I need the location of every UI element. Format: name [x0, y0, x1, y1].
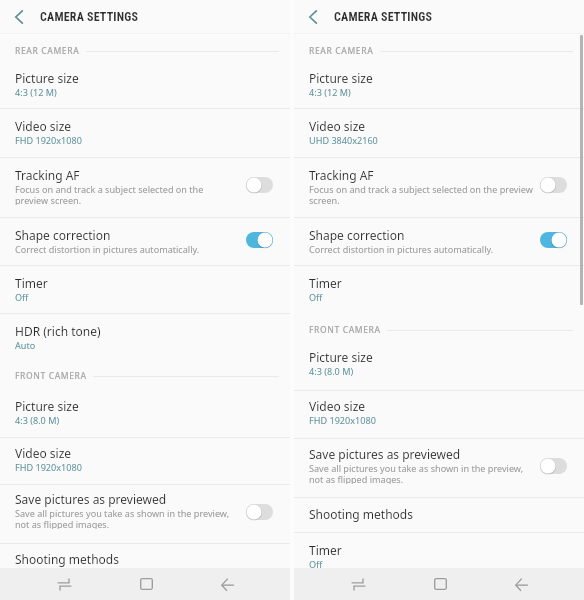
button[interactable]: Tracking AF: [294, 158, 584, 217]
button[interactable]: Picture size: [0, 391, 290, 437]
staticText: CAMERA SETTINGS: [334, 10, 433, 24]
staticText: Picture size: [15, 70, 79, 86]
staticText: CAMERA SETTINGS: [40, 10, 139, 24]
button[interactable]: Back: [459, 568, 584, 600]
button[interactable]: Tracking AF: [0, 158, 290, 217]
staticText: Auto: [15, 339, 36, 351]
staticText: 4:3 (8.0 M): [15, 414, 60, 426]
staticText: Timer: [309, 275, 342, 291]
button[interactable]: Save pictures as previewed: [294, 439, 584, 497]
staticText: Correct distortion in pictures automatic…: [309, 243, 494, 255]
staticText: Shape correction: [309, 227, 405, 243]
staticText: Tracking AF: [15, 167, 80, 183]
staticText: Video size: [309, 398, 366, 414]
staticText: Picture size: [15, 398, 79, 414]
button[interactable]: Switch on: [246, 232, 273, 248]
staticText: 4:3 (12 M): [309, 86, 351, 98]
staticText: Save pictures as previewed: [309, 446, 461, 462]
button[interactable]: Switch off: [246, 504, 273, 520]
button[interactable]: Timer: [294, 266, 584, 308]
staticText: FHD 1920x1080: [15, 461, 82, 473]
staticText: REAR CAMERA: [309, 45, 374, 57]
button[interactable]: Recent apps: [0, 568, 128, 600]
staticText: Shape correction: [15, 227, 111, 243]
button[interactable]: Back: [165, 568, 290, 600]
staticText: Save all pictures you take as shown in t…: [309, 462, 524, 474]
staticText: Save pictures as previewed: [15, 491, 167, 507]
button[interactable]: Recent apps: [294, 568, 422, 600]
staticText: FRONT CAMERA: [309, 324, 381, 336]
button[interactable]: Home: [128, 568, 165, 600]
button[interactable]: Shooting methods: [0, 544, 290, 568]
button[interactable]: Switch off: [246, 177, 273, 193]
button[interactable]: Picture size: [0, 61, 290, 108]
staticText: HDR (rich tone): [15, 323, 101, 339]
staticText: not as flipped images.: [15, 518, 110, 529]
staticText: not as flipped images.: [309, 473, 404, 484]
button[interactable]: Video size: [0, 109, 290, 157]
staticText: Video size: [309, 118, 366, 134]
staticText: Picture size: [309, 70, 373, 86]
staticText: UHD 3840x2160: [309, 134, 378, 146]
staticText: Focus on and track a subject selected on…: [15, 183, 204, 195]
staticText: FRONT CAMERA: [15, 370, 87, 382]
staticText: Picture size: [309, 349, 373, 365]
staticText: FHD 1920x1080: [309, 414, 376, 426]
button[interactable]: Video size: [294, 391, 584, 438]
staticText: Focus on and track a subject selected on…: [309, 183, 533, 195]
staticText: Tracking AF: [309, 167, 374, 183]
staticText: Off: [309, 291, 323, 303]
button[interactable]: Switch off: [540, 458, 567, 474]
staticText: preview screen.: [15, 194, 82, 205]
staticText: Shooting methods: [15, 551, 119, 567]
staticText: REAR CAMERA: [15, 45, 80, 57]
staticText: Video size: [15, 118, 72, 134]
button[interactable]: Switch off: [540, 177, 567, 193]
staticText: Correct distortion in pictures automatic…: [15, 243, 200, 255]
staticText: FHD 1920x1080: [15, 134, 82, 146]
button[interactable]: Shape correction: [0, 218, 290, 265]
staticText: Shooting methods: [309, 506, 413, 522]
button[interactable]: HDR (rich tone): [0, 314, 290, 354]
staticText: Save all pictures you take as shown in t…: [15, 507, 230, 519]
staticText: Video size: [15, 445, 72, 461]
button[interactable]: Navigate up: [300, 4, 326, 30]
staticText: Timer: [15, 275, 48, 291]
button[interactable]: Video size: [294, 109, 584, 157]
button[interactable]: Picture size: [294, 61, 584, 108]
staticText: Off: [15, 291, 29, 303]
button[interactable]: Video size: [0, 438, 290, 484]
button[interactable]: Picture size: [294, 345, 584, 390]
button[interactable]: Shape correction: [294, 218, 584, 265]
staticText: screen.: [309, 194, 340, 205]
staticText: 4:3 (12 M): [15, 86, 57, 98]
staticText: Timer: [309, 542, 342, 558]
button[interactable]: Shooting methods: [294, 498, 584, 532]
button[interactable]: Navigate up: [6, 4, 32, 30]
staticText: Off: [309, 558, 323, 568]
button[interactable]: Save pictures as previewed: [0, 485, 290, 543]
button[interactable]: Switch on: [540, 232, 567, 248]
button[interactable]: Home: [422, 568, 459, 600]
button[interactable]: Timer: [0, 266, 290, 313]
staticText: 4:3 (8.0 M): [309, 365, 354, 377]
button[interactable]: Timer: [294, 533, 584, 568]
